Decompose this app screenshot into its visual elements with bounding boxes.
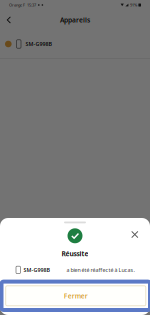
staticText: SM-G998B: [25, 40, 52, 48]
button[interactable]: Retour: [0, 10, 18, 30]
button[interactable]: SM-G998B: [0, 30, 150, 58]
staticText: a bien été réaffecté à Lucas.: [66, 266, 134, 273]
staticText: Réussite: [61, 249, 88, 258]
button[interactable]: Fermer: [1, 282, 150, 310]
staticText: Fermer: [64, 291, 88, 300]
staticText: Orange F 15:37: [9, 2, 36, 8]
staticText: SM-G998B: [23, 266, 50, 273]
staticText: 91%: [130, 2, 137, 8]
button[interactable]: Fermer: [129, 228, 141, 241]
staticText: Appareils: [60, 16, 90, 24]
